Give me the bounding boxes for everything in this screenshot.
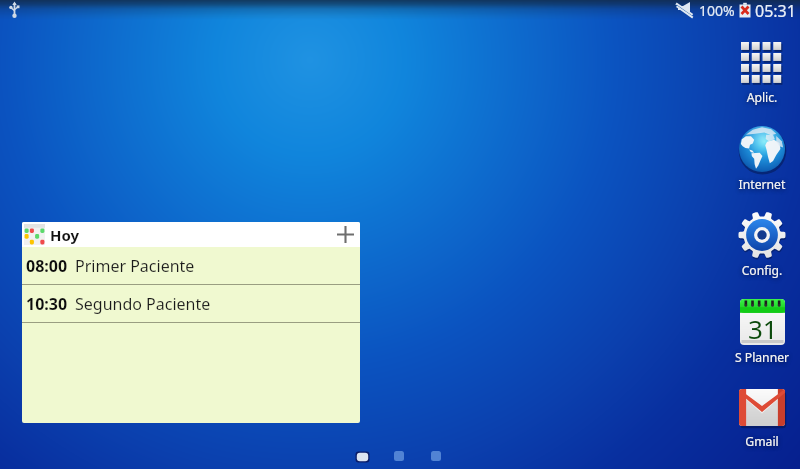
staticText: Segundo Paciente: [75, 293, 211, 315]
staticText: Config.: [726, 262, 798, 279]
button[interactable]: 08:00: [22, 247, 360, 284]
button[interactable]: Config.: [726, 207, 798, 278]
staticText: Gmail: [726, 433, 798, 450]
button[interactable]: Page 1: [355, 450, 370, 463]
staticText: 05:31: [755, 0, 796, 20]
staticText: 10:30: [26, 293, 68, 315]
staticText: 100%: [699, 1, 735, 20]
button[interactable]: Add event: [333, 222, 358, 247]
staticText: Hoy: [50, 225, 80, 245]
staticText: S Planner: [726, 349, 798, 366]
button[interactable]: Page 3: [431, 451, 441, 461]
button[interactable]: Page 2: [394, 451, 404, 461]
staticText: Internet: [726, 176, 798, 193]
button[interactable]: Internet: [726, 121, 798, 192]
button[interactable]: 31: [726, 295, 798, 365]
staticText: Aplic.: [726, 89, 798, 106]
button[interactable]: Hoy: [22, 222, 360, 247]
staticText: 08:00: [26, 255, 68, 277]
button[interactable]: 10:30: [22, 285, 360, 322]
button[interactable]: Gmail: [726, 385, 798, 449]
staticText: Primer Paciente: [75, 255, 195, 277]
staticText: 31: [748, 311, 778, 346]
button[interactable]: Aplic.: [726, 38, 798, 105]
